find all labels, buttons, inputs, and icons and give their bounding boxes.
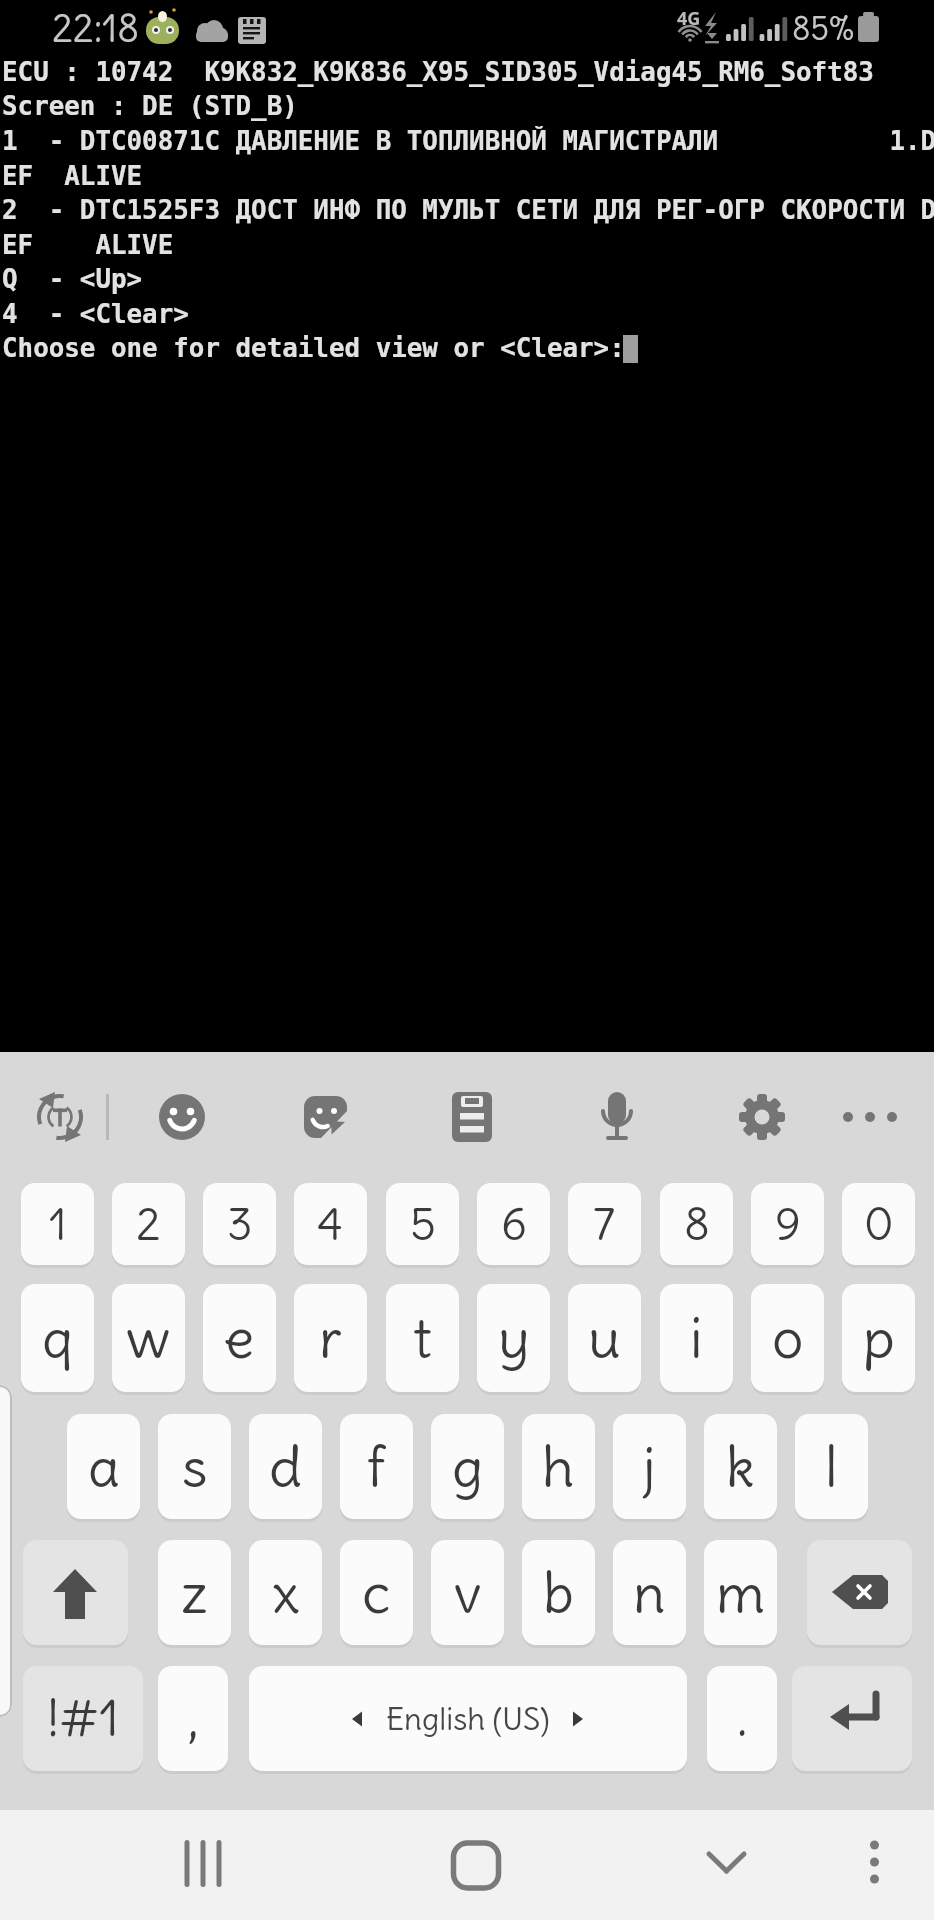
button[interactable] (249, 1666, 687, 1771)
staticText: i (690, 1303, 703, 1373)
staticText: r (319, 1303, 342, 1373)
staticText: . (737, 1687, 748, 1750)
staticText: m (716, 1558, 766, 1628)
button[interactable]: q (21, 1284, 94, 1392)
button[interactable]: u (568, 1284, 641, 1392)
staticText: 0 (864, 1196, 894, 1253)
staticText: g (452, 1432, 484, 1502)
button[interactable]: h (522, 1414, 595, 1519)
button[interactable]: p (842, 1284, 915, 1392)
button[interactable]: k (704, 1414, 777, 1519)
button[interactable] (838, 1090, 894, 1146)
staticText: d (269, 1432, 302, 1502)
staticText: Q - <Up> (2, 264, 143, 294)
button[interactable]: . (707, 1666, 777, 1771)
button[interactable] (430, 1818, 520, 1913)
staticText: y (498, 1303, 530, 1373)
button[interactable] (594, 1090, 650, 1146)
button[interactable] (792, 1666, 912, 1771)
button[interactable]: !#1 (23, 1666, 143, 1771)
button[interactable] (23, 1540, 128, 1645)
staticText: 3 (227, 1196, 253, 1253)
button[interactable]: s (158, 1414, 231, 1519)
button[interactable]: d (249, 1414, 322, 1519)
button[interactable]: 6 (477, 1183, 550, 1265)
button[interactable]: c (340, 1540, 413, 1645)
staticText: z (181, 1558, 208, 1628)
staticText: !#1 (47, 1687, 120, 1750)
button[interactable]: a (67, 1414, 140, 1519)
staticText: 1 - DTC00871C ДАВЛЕНИЕ В ТОПЛИВНОЙ МАГИС… (2, 126, 934, 156)
staticText: EF ALIVE (2, 161, 143, 191)
button[interactable]: f (340, 1414, 413, 1519)
button[interactable]: 0 (842, 1183, 915, 1265)
staticText: s (182, 1432, 208, 1502)
staticText: p (863, 1303, 895, 1373)
button[interactable]: t (386, 1284, 459, 1392)
button[interactable] (160, 1818, 250, 1913)
button[interactable]: w (112, 1284, 185, 1392)
button[interactable]: 3 (203, 1183, 276, 1265)
button[interactable] (300, 1090, 356, 1146)
button[interactable]: l (795, 1414, 868, 1519)
button[interactable]: , (158, 1666, 228, 1771)
button[interactable]: i (660, 1284, 733, 1392)
button[interactable] (682, 1818, 772, 1913)
staticText: 2 - DTC1525F3 ДОСТ ИНФ ПО МУЛЬТ СЕТИ ДЛЯ… (2, 195, 934, 225)
staticText: 1 (49, 1196, 67, 1253)
staticText: 8 (684, 1196, 710, 1253)
staticText: Screen : DE (STD_B) (2, 91, 298, 121)
staticText: 5 (410, 1196, 436, 1253)
button[interactable]: e (203, 1284, 276, 1392)
button[interactable]: 4 (294, 1183, 367, 1265)
button[interactable]: j (613, 1414, 686, 1519)
staticText: x (272, 1558, 300, 1628)
button[interactable]: r (294, 1284, 367, 1392)
button[interactable]: 9 (751, 1183, 824, 1265)
button[interactable] (807, 1540, 912, 1645)
button[interactable]: v (431, 1540, 504, 1645)
staticText: q (42, 1303, 73, 1373)
staticText: w (126, 1303, 171, 1373)
staticText: o (772, 1303, 804, 1373)
staticText: 7 (593, 1196, 616, 1253)
button[interactable]: 2 (112, 1183, 185, 1265)
button[interactable] (739, 1090, 795, 1146)
button[interactable]: z (158, 1540, 231, 1645)
button[interactable]: o (751, 1284, 824, 1392)
staticText: 22:18 (52, 5, 140, 53)
button[interactable] (36, 1090, 92, 1146)
staticText: 2 (136, 1196, 161, 1253)
staticText: j (643, 1432, 656, 1502)
staticText: c (362, 1558, 391, 1628)
staticText: t (413, 1303, 432, 1373)
button[interactable]: n (613, 1540, 686, 1645)
button[interactable]: 7 (568, 1183, 641, 1265)
button[interactable]: 1 (21, 1183, 94, 1265)
button[interactable]: x (249, 1540, 322, 1645)
staticText: u (588, 1303, 621, 1373)
staticText: b (543, 1558, 574, 1628)
staticText: 4 - <Clear> (2, 299, 189, 329)
staticText: 4 (317, 1196, 344, 1253)
staticText: ECU : 10742 K9K832_K9K836_X95_SID305_Vdi… (2, 57, 874, 87)
staticText: English (US) (386, 1699, 550, 1738)
button[interactable]: b (522, 1540, 595, 1645)
staticText: e (224, 1303, 255, 1373)
staticText: EF ALIVE (2, 230, 174, 260)
button[interactable] (159, 1090, 215, 1146)
staticText: v (454, 1558, 482, 1628)
staticText: 85% (792, 8, 855, 48)
button[interactable]: 8 (660, 1183, 733, 1265)
button[interactable]: m (704, 1540, 777, 1645)
button[interactable]: y (477, 1284, 550, 1392)
button[interactable]: 5 (386, 1183, 459, 1265)
button[interactable] (449, 1090, 505, 1146)
button[interactable] (847, 1818, 903, 1913)
staticText: n (633, 1558, 666, 1628)
button[interactable] (0, 1385, 12, 1717)
button[interactable]: g (431, 1414, 504, 1519)
staticText: l (825, 1432, 838, 1502)
staticText: 4G (677, 6, 701, 31)
staticText: , (188, 1687, 199, 1750)
